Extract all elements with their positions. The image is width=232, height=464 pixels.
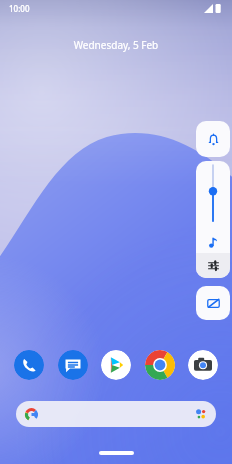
button[interactable]: Media volume [196,161,230,231]
button[interactable]: Chrome [145,350,175,380]
button[interactable]: Stop casting [196,286,230,320]
button[interactable]: Media output [196,231,230,253]
button[interactable]: Play Store [101,350,131,380]
button[interactable]: Search [16,401,216,427]
button[interactable]: Camera [188,350,218,380]
button[interactable]: Volume settings [196,253,230,278]
staticText: Wednesday, 5 Feb [0,38,232,52]
button[interactable]: Phone [14,350,44,380]
button[interactable]: Messages [58,350,88,380]
button[interactable]: Ringer mode [196,121,230,157]
staticText: 10:00 [9,3,30,14]
